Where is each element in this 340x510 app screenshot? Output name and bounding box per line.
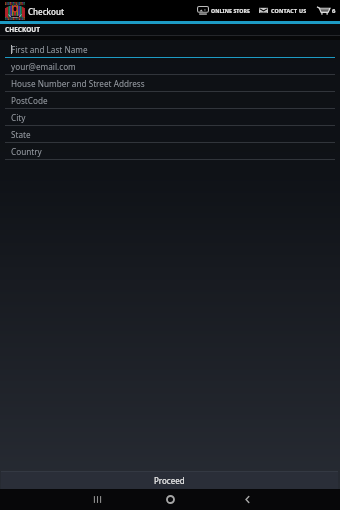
other: Cart [317, 6, 330, 15]
staticText: PostCode [11, 95, 48, 106]
button[interactable]: Country [0, 144, 340, 159]
button[interactable]: Back [227, 489, 267, 510]
staticText: State [11, 129, 31, 140]
staticText: Country [11, 146, 42, 157]
staticText: CHECKOUT [5, 25, 40, 34]
staticText: House Number and Street Address [11, 78, 145, 89]
staticText: First and Last Name [11, 44, 88, 55]
staticText: ONLINE STORE [211, 7, 251, 14]
staticText: 6 [332, 7, 336, 15]
button[interactable]: First and Last Name [0, 42, 340, 57]
button[interactable]: Proceed [1, 472, 338, 489]
other: Online Store [197, 6, 209, 15]
button[interactable]: Recent apps [77, 489, 117, 510]
staticText: City [11, 112, 26, 123]
button[interactable]: Cart [317, 6, 336, 15]
button[interactable]: Online Store [197, 6, 251, 15]
button[interactable]: Checkout [5, 2, 65, 20]
button[interactable]: PostCode [0, 93, 340, 108]
staticText: your@email.com [11, 61, 76, 72]
staticText: Proceed [154, 475, 185, 486]
button[interactable]: Home [150, 489, 190, 510]
button[interactable]: City [0, 110, 340, 125]
other: Contact Us [259, 6, 268, 15]
button[interactable]: House Number and Street Address [0, 76, 340, 91]
staticText: Checkout [28, 6, 65, 17]
button[interactable]: your@email.com [0, 59, 340, 74]
button[interactable]: Contact Us [259, 6, 307, 15]
staticText: CONTACT US [271, 7, 307, 14]
button[interactable]: State [0, 127, 340, 142]
